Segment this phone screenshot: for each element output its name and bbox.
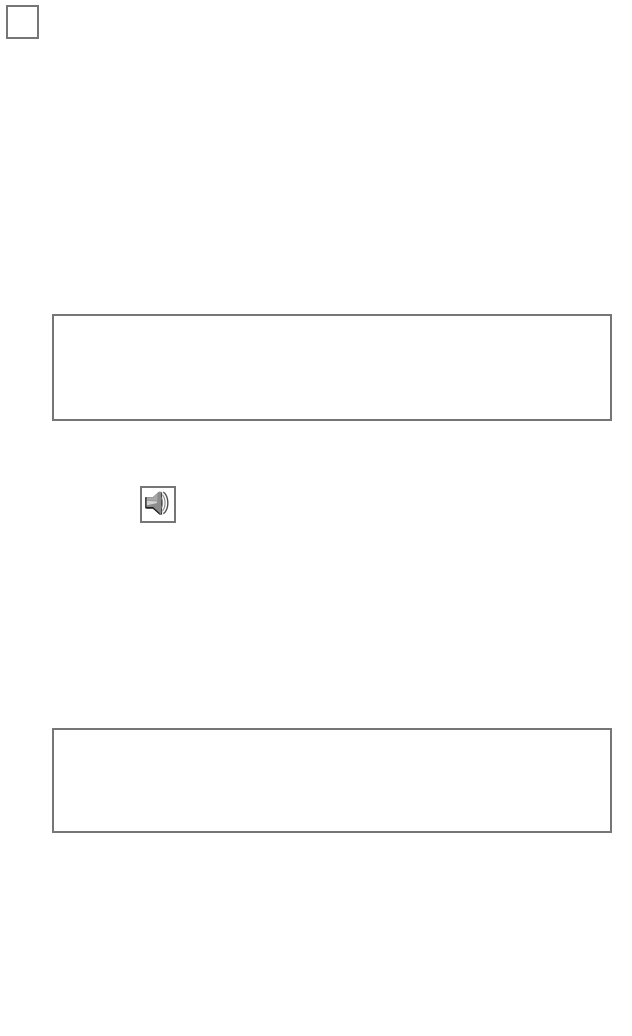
button[interactable]: Play pronunciation xyxy=(140,486,176,523)
